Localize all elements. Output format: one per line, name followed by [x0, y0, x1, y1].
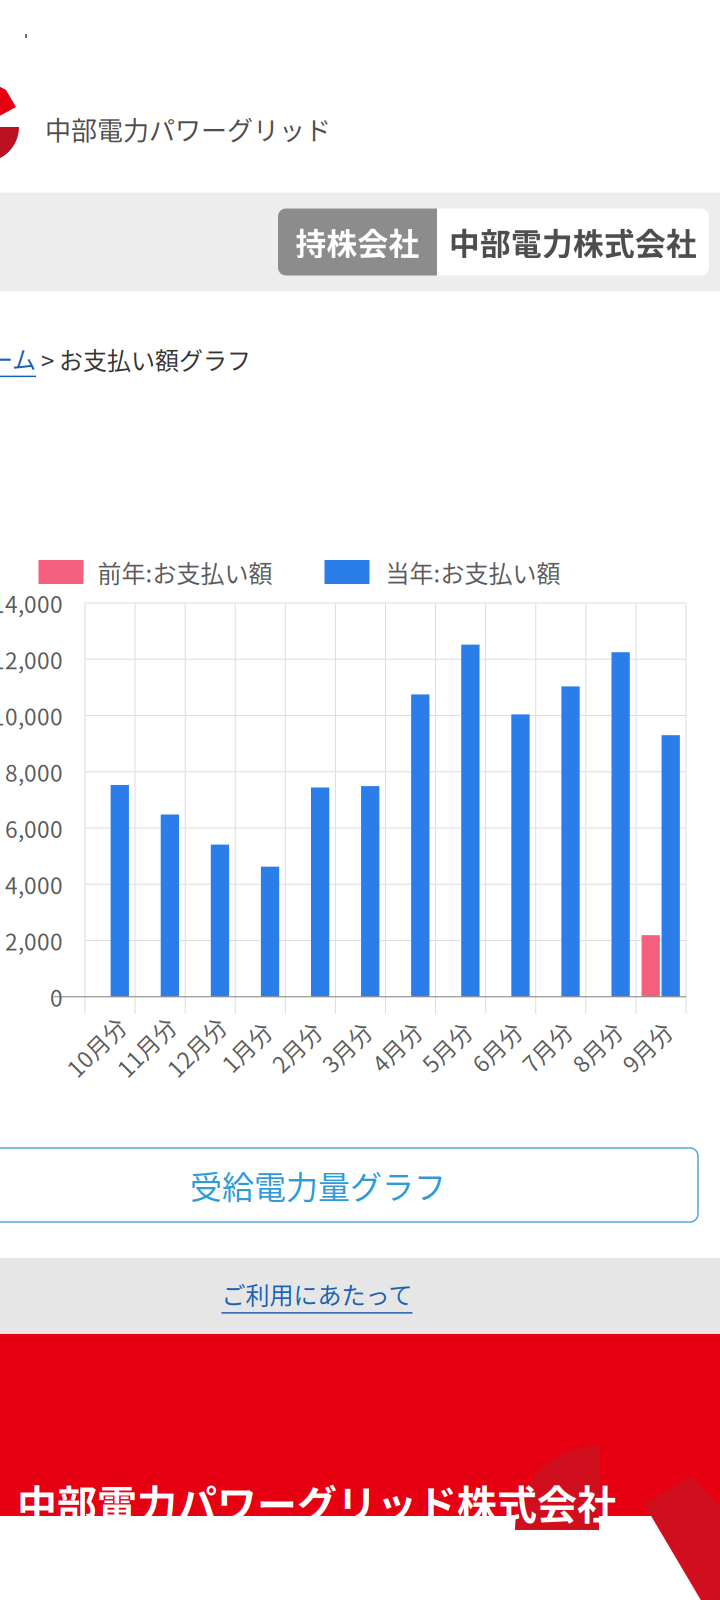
staticText: 10,000: [0, 699, 63, 732]
button[interactable]: 持株会社: [278, 208, 437, 275]
staticText: 持株会社: [295, 220, 419, 264]
staticText: 中部電力パワーグリッド株式会社: [17, 1473, 617, 1531]
staticText: 4月分: [367, 1030, 426, 1063]
staticText: 14,000: [0, 587, 63, 619]
staticText: 0: [50, 980, 63, 1013]
staticText: 11月分: [110, 1030, 182, 1063]
staticText: ご利用にあたって: [221, 1276, 412, 1311]
staticText: 前年:お支払い額: [97, 555, 272, 589]
staticText: 中部電力株式会社: [449, 220, 697, 264]
button[interactable]: ご利用にあたって: [221, 1276, 412, 1314]
button[interactable]: 受給電力量グラフ: [0, 1148, 698, 1222]
staticText: 6月分: [467, 1030, 526, 1063]
staticText: 12,000: [0, 643, 63, 676]
staticText: 受給電力量グラフ: [190, 1162, 446, 1208]
staticText: 9月分: [617, 1030, 676, 1063]
staticText: 2月分: [267, 1030, 326, 1063]
staticText: 7月分: [517, 1030, 576, 1063]
staticText: >: [36, 342, 59, 376]
staticText: 12月分: [160, 1030, 232, 1063]
staticText: お支払い額グラフ: [59, 342, 251, 376]
staticText: 10月分: [60, 1030, 132, 1063]
staticText: 6,000: [5, 812, 63, 844]
button[interactable]: ーム: [0, 341, 36, 377]
staticText: 4,000: [5, 868, 63, 901]
staticText: 8月分: [567, 1030, 626, 1063]
staticText: 1月分: [217, 1030, 276, 1063]
button[interactable]: 中部電力株式会社: [437, 208, 709, 275]
staticText: 2,000: [5, 924, 63, 957]
staticText: ーム: [0, 341, 36, 376]
staticText: 5月分: [417, 1030, 476, 1063]
staticText: 3月分: [317, 1030, 376, 1063]
staticText: 8,000: [5, 755, 63, 788]
staticText: 当年:お支払い額: [385, 555, 560, 589]
staticText: 中部電力パワーグリッド: [45, 110, 331, 148]
